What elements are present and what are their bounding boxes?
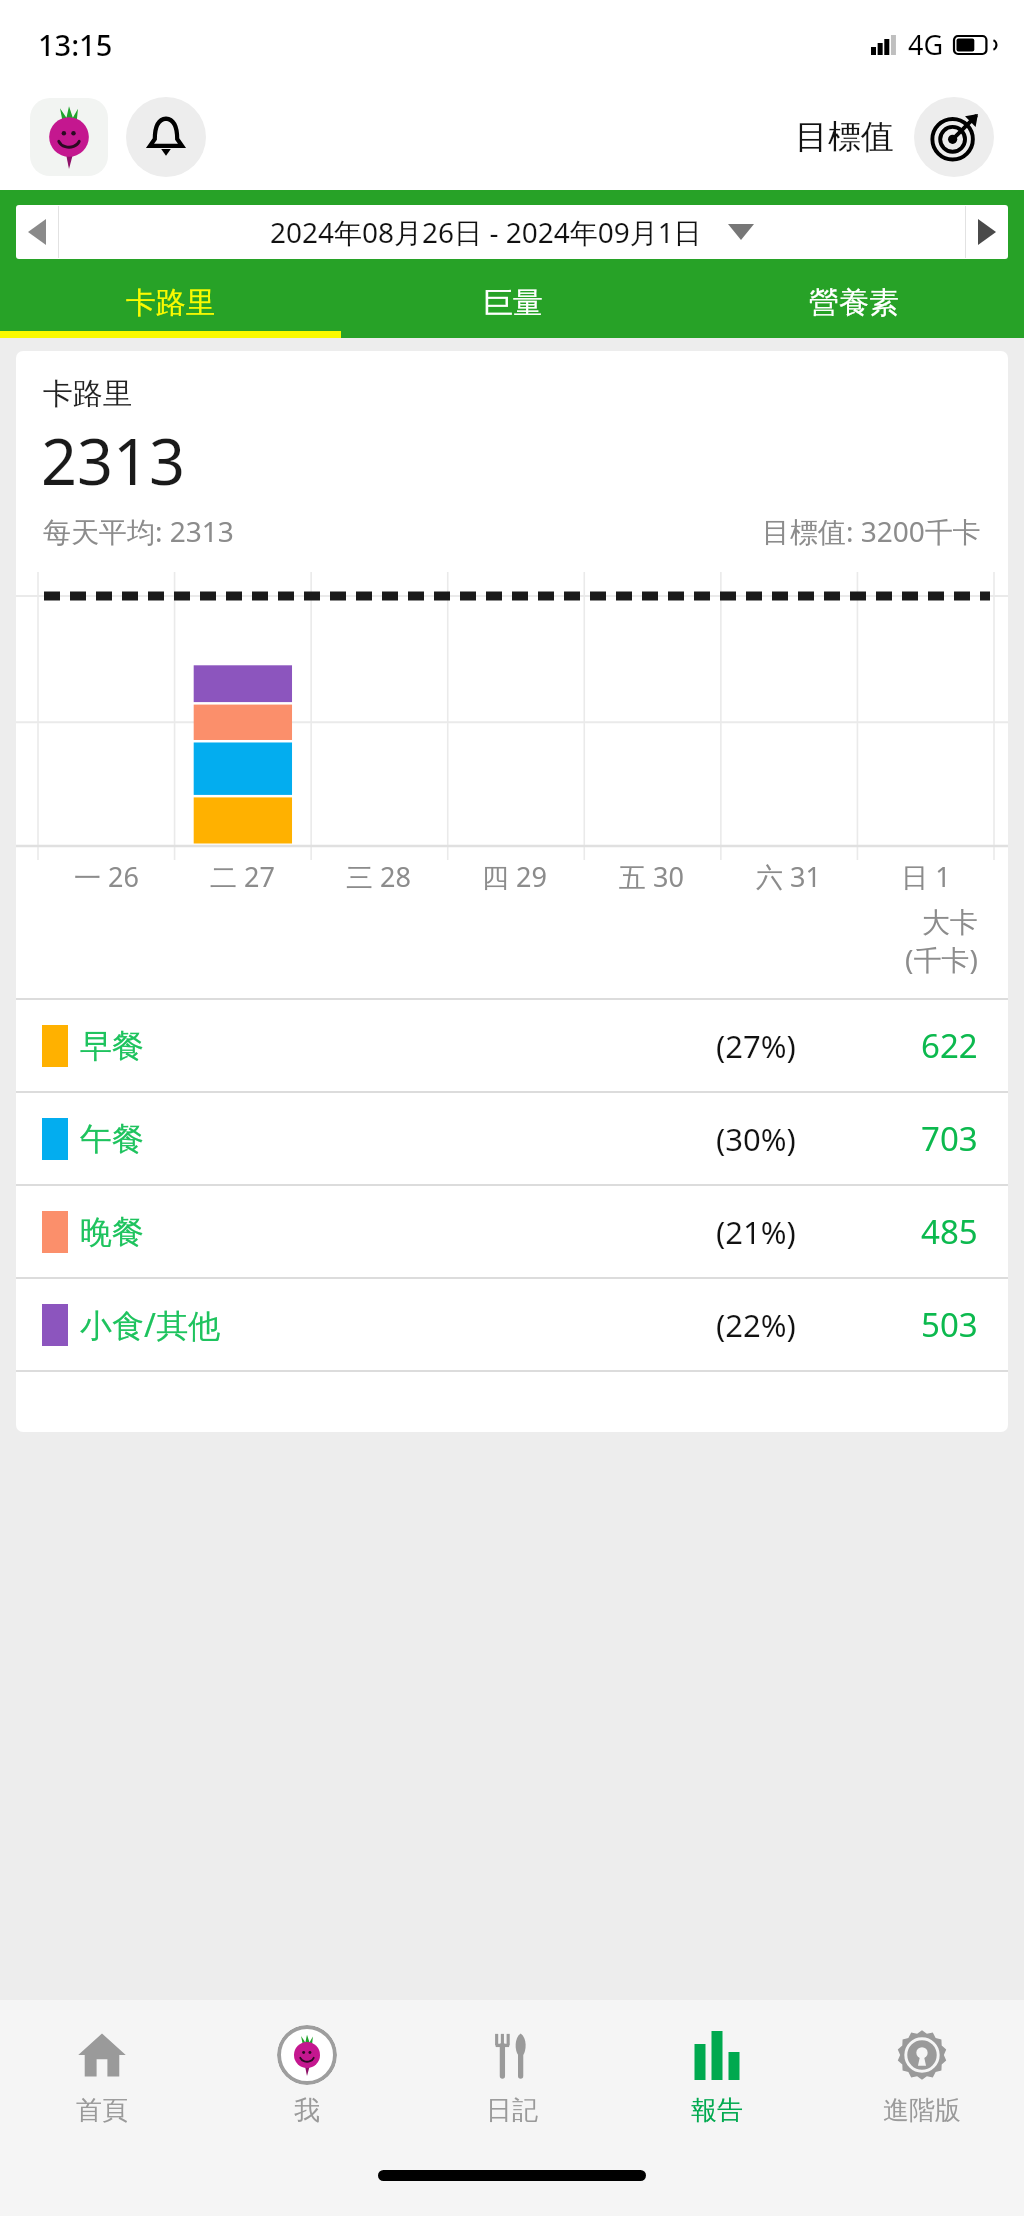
staticText: 目標值: [795, 116, 894, 158]
staticText: 622: [921, 1023, 978, 1068]
button[interactable]: 進階版: [819, 2000, 1024, 2150]
button[interactable]: 2024年08月26日 - 2024年09月1日: [59, 205, 965, 259]
staticText: (30%): [716, 1118, 796, 1160]
staticText: 巨量: [483, 284, 543, 322]
staticText: 早餐: [80, 1026, 144, 1066]
staticText: 首頁: [76, 2094, 128, 2127]
staticText: 一 26: [74, 858, 139, 895]
button[interactable]: 巨量: [342, 275, 683, 331]
staticText: 報告: [691, 2094, 743, 2127]
button[interactable]: 晚餐: [16, 1186, 1008, 1277]
button[interactable]: 報告: [614, 2000, 819, 2150]
staticText: 13:15: [38, 25, 113, 64]
staticText: (22%): [716, 1304, 796, 1346]
button[interactable]: 營養素: [683, 275, 1024, 331]
button[interactable]: Profile: [30, 98, 108, 176]
button[interactable]: Notifications: [126, 97, 206, 177]
staticText: 703: [921, 1116, 978, 1161]
staticText: 2313: [41, 418, 186, 504]
staticText: (27%): [716, 1025, 796, 1067]
staticText: 503: [921, 1302, 978, 1347]
staticText: 營養素: [809, 284, 899, 322]
staticText: 卡路里: [43, 375, 133, 413]
staticText: 日記: [486, 2094, 538, 2127]
button[interactable]: 日記: [409, 2000, 614, 2150]
staticText: 485: [921, 1209, 978, 1254]
staticText: (千卡): [905, 940, 978, 978]
staticText: 進階版: [883, 2094, 961, 2127]
button[interactable]: Previous week: [16, 205, 58, 259]
button[interactable]: 首頁: [0, 2000, 204, 2150]
button[interactable]: 卡路里: [0, 275, 342, 331]
button[interactable]: 小食/其他: [16, 1279, 1008, 1370]
staticText: 大卡: [922, 905, 978, 940]
button[interactable]: 午餐: [16, 1093, 1008, 1184]
staticText: 2024年08月26日 - 2024年09月1日: [270, 213, 702, 251]
staticText: 二 27: [210, 858, 275, 895]
button[interactable]: Next week: [966, 205, 1008, 259]
staticText: 晚餐: [80, 1212, 144, 1252]
staticText: 午餐: [80, 1119, 144, 1159]
staticText: 我: [294, 2094, 320, 2127]
button[interactable]: 目標值: [785, 97, 994, 177]
staticText: 小食/其他: [80, 1303, 220, 1347]
button[interactable]: 早餐: [16, 1000, 1008, 1091]
staticText: 日 1: [901, 858, 951, 895]
staticText: 卡路里: [126, 284, 216, 322]
button[interactable]: 我: [204, 2000, 409, 2150]
staticText: 五 30: [619, 858, 684, 895]
staticText: 目標值: 3200千卡: [762, 512, 981, 550]
staticText: 四 29: [482, 858, 547, 895]
staticText: 三 28: [346, 858, 411, 895]
staticText: 每天平均: 2313: [43, 512, 234, 550]
staticText: 六 31: [756, 858, 821, 895]
staticText: 4G: [908, 26, 944, 63]
staticText: (21%): [716, 1211, 796, 1253]
